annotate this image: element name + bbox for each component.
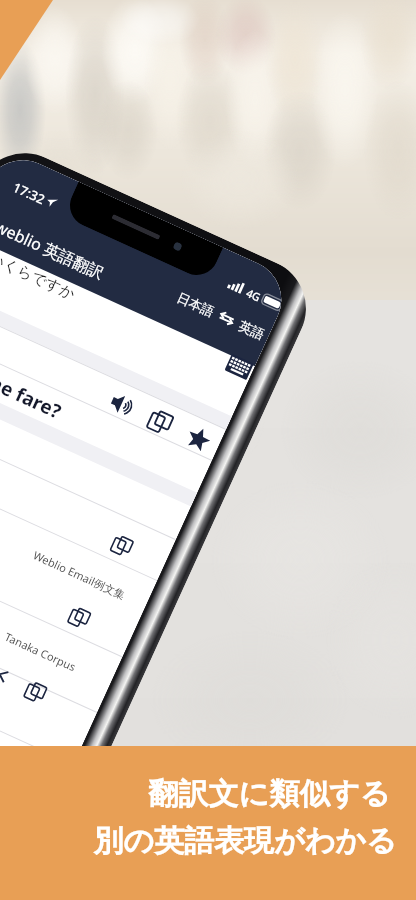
staticText: 別の英語表現がわかる	[93, 822, 397, 860]
staticText: 翻訳文に類似する	[148, 775, 391, 813]
button[interactable]: 日本語	[175, 289, 267, 342]
button[interactable]: Copy	[18, 674, 52, 709]
button[interactable]: Copy	[140, 402, 180, 442]
staticText: weblio 英語翻訳	[0, 215, 108, 284]
button[interactable]: Speak	[102, 385, 142, 424]
staticText: 4G	[244, 285, 264, 305]
staticText: 17:32	[10, 178, 48, 208]
staticText: Weblio Email例文集	[31, 547, 128, 602]
button[interactable]: Favourite	[178, 420, 218, 459]
staticText: 日本語	[175, 289, 217, 320]
staticText: Tanaka Corpus	[3, 629, 79, 674]
staticText: What's the fare?	[0, 337, 65, 424]
button[interactable]: Copy	[104, 528, 139, 562]
staticText: いくらですか	[0, 249, 79, 304]
button[interactable]: Keyboard	[221, 348, 258, 385]
staticText: 英語	[237, 317, 267, 342]
button[interactable]: Copy	[62, 600, 96, 634]
